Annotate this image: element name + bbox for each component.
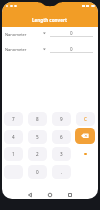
staticText: C <box>84 116 87 122</box>
button[interactable] <box>28 193 32 197</box>
staticText: 0 <box>70 46 73 52</box>
button[interactable]: Nanometer <box>5 45 37 53</box>
button[interactable]: . <box>52 165 71 179</box>
staticText: 0 <box>70 30 73 36</box>
button[interactable]: 9 <box>52 112 71 126</box>
button[interactable]: 5 <box>28 130 47 144</box>
button[interactable] <box>76 147 95 161</box>
staticText: 2 <box>36 151 39 157</box>
staticText: Nanometer <box>5 47 27 52</box>
button[interactable] <box>68 193 72 197</box>
button[interactable] <box>48 193 52 197</box>
staticText: 7 <box>12 116 15 122</box>
button[interactable]: Nanometer <box>5 30 37 38</box>
button[interactable]: 4 <box>4 130 23 144</box>
button[interactable]: 6 <box>52 130 71 144</box>
staticText: 5 <box>36 134 39 140</box>
button[interactable]: 1 <box>4 147 23 161</box>
staticText: 9 <box>60 116 63 122</box>
button[interactable]: 0 <box>28 165 47 179</box>
button[interactable]: 8 <box>28 112 47 126</box>
staticText: Nanometer <box>5 32 27 37</box>
staticText: 1 <box>12 151 15 157</box>
button[interactable]: C <box>76 112 95 126</box>
button[interactable]: 7 <box>4 112 23 126</box>
staticText: Length convert <box>32 17 68 23</box>
button[interactable]: 3 <box>52 147 71 161</box>
staticText: 8 <box>36 116 39 122</box>
staticText: 6 <box>60 134 63 140</box>
button[interactable]: 2 <box>28 147 47 161</box>
button[interactable] <box>75 128 95 144</box>
staticText: . <box>61 169 63 175</box>
staticText: 3 <box>60 151 63 157</box>
staticText: 0 <box>36 169 39 175</box>
staticText: 4 <box>12 134 15 140</box>
